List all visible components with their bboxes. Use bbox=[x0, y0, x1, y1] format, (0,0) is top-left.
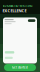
staticText: AUTOMATED WRITING bbox=[2, 4, 32, 8]
staticText: EXCELLENCE bbox=[2, 8, 26, 13]
button[interactable]: Options bbox=[28, 19, 35, 22]
button[interactable]: Get started bbox=[4, 64, 36, 71]
staticText: Get started bbox=[12, 66, 28, 69]
